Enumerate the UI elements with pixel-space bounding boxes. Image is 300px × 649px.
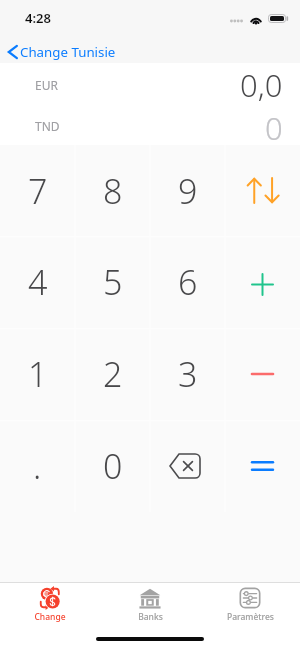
staticText: EUR: [35, 77, 58, 93]
button[interactable]: 0: [75, 420, 150, 512]
other: Plus: [252, 274, 273, 295]
staticText: 2: [103, 351, 123, 397]
button[interactable]: EUR: [0, 63, 300, 107]
button[interactable]: Plus: [225, 236, 300, 328]
staticText: 0,0: [240, 64, 283, 106]
other: Swap currencies: [246, 178, 279, 203]
button[interactable]: Change Tunisie: [0, 41, 300, 63]
staticText: Banks: [138, 611, 163, 623]
staticText: .: [33, 443, 42, 489]
other: Banks tab: [139, 587, 161, 609]
staticText: 4:28: [25, 9, 51, 27]
button[interactable]: TND: [0, 107, 300, 145]
staticText: 0: [265, 107, 283, 145]
staticText: 7: [28, 168, 48, 214]
staticText: Change: [34, 611, 66, 623]
staticText: 3: [178, 351, 198, 397]
other: Delete: [170, 454, 200, 478]
button[interactable]: Swap currencies: [225, 145, 300, 236]
staticText: 1: [28, 351, 48, 397]
other: Change tab: [39, 587, 61, 609]
other: Equals: [252, 461, 273, 471]
button[interactable]: 3: [150, 328, 225, 420]
staticText: 4: [28, 259, 48, 305]
staticText: 9: [178, 168, 198, 214]
button[interactable]: 6: [150, 236, 225, 328]
button[interactable]: 7: [0, 145, 75, 236]
other: Settings tab: [239, 587, 261, 609]
staticText: 0: [103, 443, 123, 489]
button[interactable]: Settings tab: [200, 583, 300, 623]
button[interactable]: 8: [75, 145, 150, 236]
staticText: 8: [103, 168, 123, 214]
button[interactable]: Delete: [150, 420, 225, 512]
staticText: 5: [103, 259, 123, 305]
staticText: 6: [178, 259, 198, 305]
button[interactable]: Change tab: [0, 583, 100, 623]
button[interactable]: 2: [75, 328, 150, 420]
staticText: Change Tunisie: [20, 43, 116, 61]
button[interactable]: .: [0, 420, 75, 512]
button[interactable]: 9: [150, 145, 225, 236]
button[interactable]: 5: [75, 236, 150, 328]
button[interactable]: Equals: [225, 420, 300, 512]
staticText: TND: [35, 118, 60, 134]
button[interactable]: Minus: [225, 328, 300, 420]
other: Minus: [252, 372, 273, 376]
staticText: Paramètres: [227, 611, 274, 623]
button[interactable]: Banks tab: [100, 583, 200, 623]
button[interactable]: 4: [0, 236, 75, 328]
button[interactable]: 1: [0, 328, 75, 420]
